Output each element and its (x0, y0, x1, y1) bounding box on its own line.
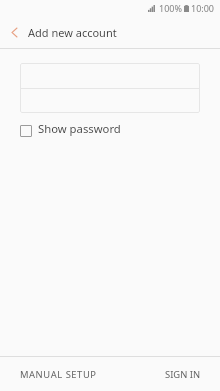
button[interactable] (20, 63, 200, 88)
staticText: SIGN IN (165, 368, 201, 381)
staticText: Show password (38, 121, 121, 136)
staticText: Add new account (28, 25, 117, 40)
staticText: MANUAL SETUP (20, 368, 97, 381)
button[interactable]: SIGN IN (145, 357, 220, 391)
button[interactable]: Back (0, 16, 28, 48)
staticText: 100% (159, 2, 182, 14)
button[interactable]: MANUAL SETUP (0, 357, 117, 391)
button[interactable] (20, 89, 200, 113)
staticText: 10:00 (191, 2, 215, 14)
button[interactable]: Show password (20, 122, 220, 138)
